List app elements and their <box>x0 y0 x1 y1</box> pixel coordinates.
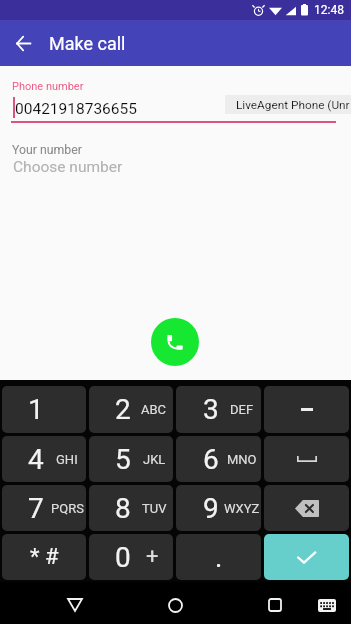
staticText: DEF <box>230 402 254 417</box>
button[interactable]: Space <box>264 436 349 482</box>
staticText: Phone number <box>12 80 84 93</box>
staticText: 0 <box>115 541 131 574</box>
button[interactable]: 1 <box>2 386 86 433</box>
staticText: 7 <box>28 492 44 525</box>
staticText: 5 <box>115 443 131 476</box>
staticText: 3 <box>203 393 219 426</box>
button[interactable]: Keyboard <box>309 584 345 624</box>
button[interactable]: * # <box>2 534 86 580</box>
staticText: + <box>146 544 159 570</box>
staticText: WXYZ <box>224 501 260 516</box>
staticText: 9 <box>203 492 219 525</box>
button[interactable]: LiveAgent Phone (Unr <box>225 95 351 114</box>
staticText: 12:48 <box>314 3 344 17</box>
staticText: 4 <box>28 443 44 476</box>
staticText: 6 <box>203 443 219 476</box>
staticText: 8 <box>115 492 131 525</box>
button[interactable]: 8 <box>89 485 173 531</box>
button[interactable]: 4 <box>2 436 86 482</box>
button[interactable]: 5 <box>89 436 173 482</box>
staticText: TUV <box>142 501 167 516</box>
button[interactable]: 7 <box>2 485 86 531</box>
button[interactable]: . <box>176 534 261 580</box>
staticText: Your number <box>12 143 82 157</box>
staticText: GHI <box>56 452 78 467</box>
button[interactable]: Back <box>6 26 40 60</box>
button[interactable]: 3 <box>176 386 261 433</box>
staticText: LiveAgent Phone (Unr <box>236 98 350 112</box>
button[interactable]: Choose number <box>13 158 123 176</box>
button[interactable]: Backspace <box>264 485 349 531</box>
button[interactable]: Back <box>55 584 95 624</box>
staticText: MNO <box>227 452 257 467</box>
staticText: JKL <box>143 452 166 467</box>
button[interactable]: 6 <box>176 436 261 482</box>
button[interactable]: 9 <box>176 485 261 531</box>
button[interactable]: Enter <box>264 534 349 580</box>
staticText: Make call <box>49 33 126 54</box>
staticText: PQRS <box>51 501 84 516</box>
button[interactable]: Home <box>155 584 195 624</box>
staticText: * # <box>30 544 59 570</box>
staticText: 2 <box>115 393 131 426</box>
button[interactable]: 0 <box>89 534 173 580</box>
button[interactable]: Recents <box>255 584 295 624</box>
staticText: 1 <box>28 393 44 426</box>
staticText: 00421918736655 <box>15 100 137 118</box>
button[interactable]: Call <box>151 318 199 366</box>
staticText: ABC <box>141 402 167 417</box>
button[interactable]: Dash <box>264 386 349 433</box>
staticText: . <box>215 541 223 574</box>
button[interactable]: 2 <box>89 386 173 433</box>
